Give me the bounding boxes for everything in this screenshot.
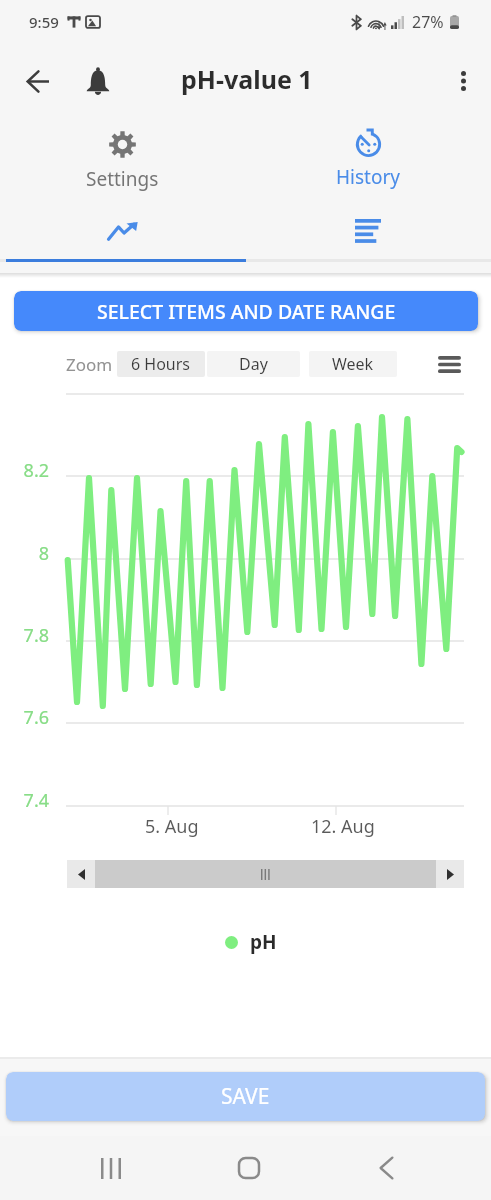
staticText: 5. Aug [145, 814, 199, 839]
button[interactable]: Day [207, 351, 300, 377]
staticText: Zoom [66, 353, 113, 376]
button[interactable]: 6 Hours [117, 351, 205, 377]
staticText: 7.6 [1, 705, 49, 730]
button[interactable]: List view [245, 202, 491, 259]
button[interactable]: Scroll left [67, 860, 95, 888]
staticText: 7.8 [1, 623, 49, 648]
button[interactable]: Notifications [76, 44, 120, 118]
button[interactable]: Recent apps [67, 1136, 155, 1200]
staticText: History [336, 164, 400, 190]
button[interactable]: Back [0, 44, 76, 118]
staticText: Settings [86, 166, 159, 192]
button[interactable]: Chart view [0, 202, 245, 259]
staticText: 8.2 [1, 458, 49, 483]
button[interactable]: Scroll right [436, 860, 464, 888]
staticText: 7.4 [1, 788, 49, 813]
button[interactable]: SELECT ITEMS AND DATE RANGE [14, 291, 478, 331]
button[interactable]: SAVE [6, 1072, 485, 1121]
button[interactable]: More options [436, 44, 491, 118]
staticText: pH-value 1 [181, 62, 313, 96]
button[interactable]: Back [342, 1136, 430, 1200]
button[interactable]: Week [309, 351, 397, 377]
button[interactable]: History [245, 118, 491, 202]
button[interactable]: Home [205, 1136, 293, 1200]
staticText: SELECT ITEMS AND DATE RANGE [97, 298, 396, 325]
staticText: Week [332, 353, 374, 375]
staticText: 9:59 [29, 12, 59, 32]
staticText: SAVE [221, 1082, 270, 1111]
staticText: 6 Hours [131, 353, 191, 375]
staticText: Day [239, 353, 268, 375]
staticText: pH [250, 929, 277, 955]
staticText: 8 [1, 541, 49, 566]
staticText: 27% [412, 11, 444, 33]
button[interactable]: Chart options [434, 351, 464, 377]
button[interactable] [95, 860, 436, 888]
staticText: 12. Aug [311, 814, 375, 839]
button[interactable]: Settings [0, 118, 245, 202]
